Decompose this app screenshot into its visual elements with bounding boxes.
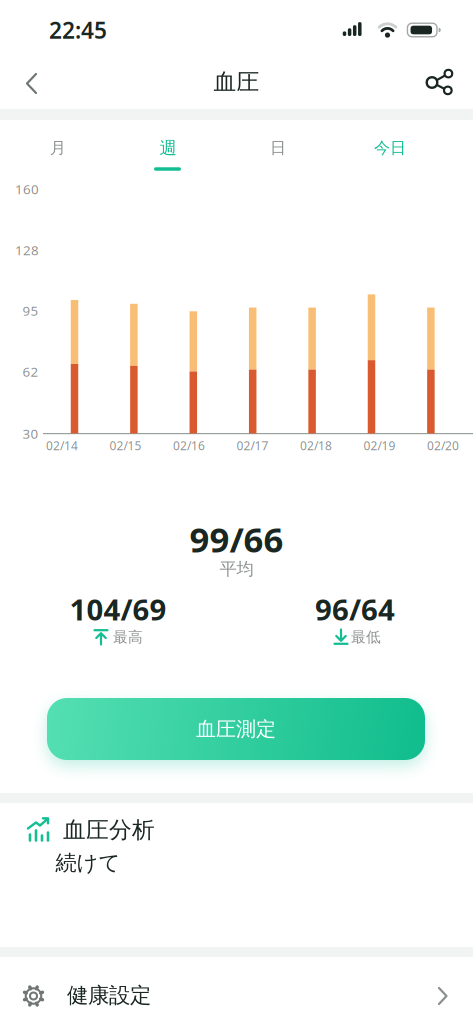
button[interactable]: 月: [50, 138, 66, 158]
staticText: 月: [50, 138, 66, 158]
staticText: 血圧測定: [196, 717, 276, 741]
staticText: 最低: [351, 628, 381, 646]
button[interactable]: 今日: [374, 138, 406, 158]
staticText: 健康設定: [67, 982, 151, 1009]
staticText: 血圧分析: [63, 816, 155, 844]
staticText: 02/18: [300, 437, 332, 453]
button[interactable]: 血圧測定: [47, 698, 425, 760]
staticText: 02/16: [173, 437, 205, 453]
button[interactable]: Back: [23, 72, 47, 96]
staticText: 160: [15, 180, 39, 198]
staticText: 続けて: [55, 850, 120, 876]
staticText: 96/64: [315, 589, 395, 628]
button[interactable]: Share: [425, 69, 455, 97]
staticText: 週: [159, 137, 176, 159]
staticText: 62: [22, 363, 38, 380]
staticText: 平均: [219, 558, 253, 580]
staticText: 104/69: [69, 589, 166, 628]
button[interactable]: 血圧分析: [0, 803, 473, 947]
staticText: 02/19: [363, 437, 395, 453]
staticText: 128: [15, 241, 39, 259]
button[interactable]: 健康設定: [0, 957, 473, 1024]
staticText: 22:45: [49, 15, 107, 45]
button[interactable]: 週: [159, 137, 176, 159]
staticText: 02/20: [427, 437, 459, 453]
staticText: 血圧: [213, 68, 259, 96]
staticText: 日: [270, 138, 286, 158]
button[interactable]: 日: [270, 138, 286, 158]
staticText: 最高: [113, 628, 143, 646]
staticText: 95: [22, 302, 38, 319]
staticText: 02/17: [236, 437, 268, 453]
staticText: 99/66: [189, 516, 283, 562]
staticText: 今日: [374, 138, 406, 158]
staticText: 02/14: [46, 437, 78, 453]
staticText: 30: [22, 425, 38, 442]
staticText: 02/15: [109, 437, 141, 453]
